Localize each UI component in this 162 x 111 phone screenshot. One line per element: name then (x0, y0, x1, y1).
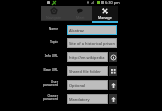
staticText: Optional (69, 83, 86, 88)
button[interactable]: Navigate (41, 6, 67, 21)
staticText: Info URL (44, 53, 58, 57)
button[interactable]: Site of a historical prison (67, 38, 117, 48)
staticText: Navigate (46, 15, 62, 20)
button[interactable]: Meet (67, 6, 93, 21)
button[interactable]: http://en.wikipedia (67, 52, 108, 62)
staticText: 6:30 pm (105, 0, 120, 5)
button[interactable]: Manage (92, 6, 118, 21)
button[interactable]: Mandatory (67, 94, 108, 104)
button[interactable]: Open (109, 52, 117, 62)
staticText: Shared file folder (69, 69, 101, 74)
button[interactable]: Open (109, 94, 117, 104)
button[interactable]: Optional (67, 80, 108, 90)
staticText: User password (43, 79, 58, 87)
staticText: Alcatraz (69, 28, 84, 33)
button[interactable]: Alcatraz (67, 25, 117, 35)
staticText: Name (48, 26, 58, 30)
staticText: Topic (49, 39, 58, 43)
staticText: Meet (76, 15, 85, 20)
button[interactable]: Open (109, 80, 117, 90)
staticText: Site of a historical prison (69, 41, 115, 46)
staticText: http://en.wikipedia (69, 55, 105, 60)
staticText: Base URL (43, 67, 58, 71)
staticText: Owner password (43, 93, 58, 101)
staticText: Manage (98, 15, 112, 20)
button[interactable]: Open (109, 66, 117, 76)
button[interactable]: Shared file folder (67, 66, 108, 76)
staticText: Mandatory (69, 97, 90, 102)
